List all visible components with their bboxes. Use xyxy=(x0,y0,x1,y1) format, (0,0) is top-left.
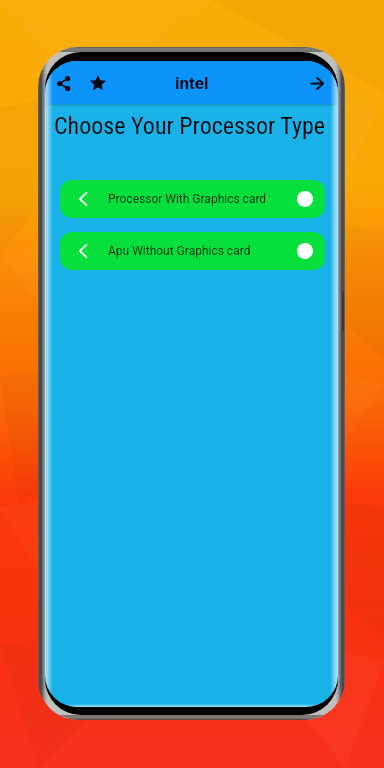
button[interactable]: Apu Without Graphics card xyxy=(60,232,325,270)
staticText: Choose Your Processor Type xyxy=(54,112,326,140)
staticText: intel xyxy=(175,73,209,93)
button[interactable]: Processor With Graphics card xyxy=(60,180,325,218)
staticText: Apu Without Graphics card xyxy=(108,244,251,258)
button[interactable]: Favourite xyxy=(81,66,115,100)
staticText: Processor With Graphics card xyxy=(108,192,267,206)
button[interactable]: Next xyxy=(300,66,334,100)
button[interactable]: Share xyxy=(46,66,80,100)
